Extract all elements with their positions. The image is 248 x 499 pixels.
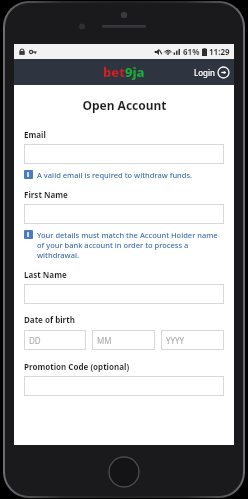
staticText: Promotion Code (optional) bbox=[24, 361, 130, 372]
other: Information bbox=[24, 230, 33, 239]
button[interactable]: MM bbox=[92, 330, 155, 350]
button[interactable] bbox=[24, 144, 224, 164]
staticText: i bbox=[27, 230, 30, 239]
staticText: YYYY bbox=[166, 335, 185, 346]
staticText: Open Account bbox=[82, 97, 167, 113]
other: Information bbox=[24, 170, 33, 179]
button[interactable] bbox=[24, 376, 224, 396]
staticText: Date of birth bbox=[24, 314, 75, 325]
button[interactable] bbox=[24, 284, 224, 304]
staticText: Last Name bbox=[24, 269, 67, 280]
staticText: Email bbox=[24, 129, 46, 140]
staticText: A valid email is required to withdraw fu… bbox=[37, 170, 193, 180]
staticText: DD bbox=[29, 335, 41, 346]
button[interactable]: Login bbox=[189, 64, 234, 81]
staticText: i bbox=[27, 170, 30, 179]
staticText: 61% bbox=[183, 46, 200, 57]
button[interactable]: YYYY bbox=[161, 330, 224, 350]
staticText: 11:29 bbox=[209, 46, 230, 57]
button[interactable]: DD bbox=[24, 330, 86, 350]
staticText: Your details must match the Account Hold… bbox=[37, 230, 224, 260]
button[interactable] bbox=[24, 204, 224, 224]
staticText: MM bbox=[97, 335, 112, 346]
staticText: Login bbox=[194, 67, 215, 78]
staticText: First Name bbox=[24, 189, 68, 200]
staticText: bet9ja bbox=[103, 63, 145, 81]
